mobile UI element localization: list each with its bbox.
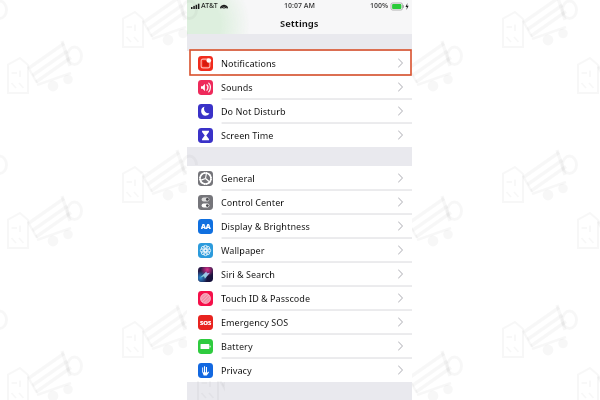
staticText: AA — [201, 222, 211, 232]
staticText: Control Center — [221, 196, 285, 208]
staticText: Display & Brightness — [221, 220, 310, 232]
button[interactable]: Notifications — [187, 51, 412, 75]
staticText: Notifications — [221, 57, 276, 69]
staticText: Sounds — [221, 81, 253, 93]
button[interactable]: AA — [187, 214, 412, 238]
button[interactable]: Touch ID & Passcode — [187, 286, 412, 310]
button[interactable]: Sounds — [187, 75, 412, 99]
button[interactable]: Privacy — [187, 358, 412, 382]
staticText: Touch ID & Passcode — [221, 292, 311, 304]
staticText: AT&T — [201, 1, 218, 11]
button[interactable]: Do Not Disturb — [187, 99, 412, 123]
button[interactable]: Control Center — [187, 190, 412, 214]
staticText: Emergency SOS — [221, 316, 289, 328]
button[interactable]: Screen Time — [187, 123, 412, 147]
staticText: 100% — [370, 1, 389, 11]
staticText: General — [221, 172, 255, 184]
staticText: 10:07 AM — [284, 1, 315, 11]
staticText: Screen Time — [221, 129, 274, 141]
button[interactable]: Battery — [187, 334, 412, 358]
button[interactable]: General — [187, 166, 412, 190]
button[interactable]: SOS — [187, 310, 412, 334]
staticText: Siri & Search — [221, 268, 275, 280]
staticText: Wallpaper — [221, 244, 265, 256]
staticText: Battery — [221, 340, 253, 352]
button[interactable]: Wallpaper — [187, 238, 412, 262]
staticText: Do Not Disturb — [221, 105, 286, 117]
staticText: Settings — [280, 17, 319, 30]
staticText: SOS — [200, 319, 212, 327]
button[interactable]: Siri & Search — [187, 262, 412, 286]
staticText: Privacy — [221, 364, 252, 376]
